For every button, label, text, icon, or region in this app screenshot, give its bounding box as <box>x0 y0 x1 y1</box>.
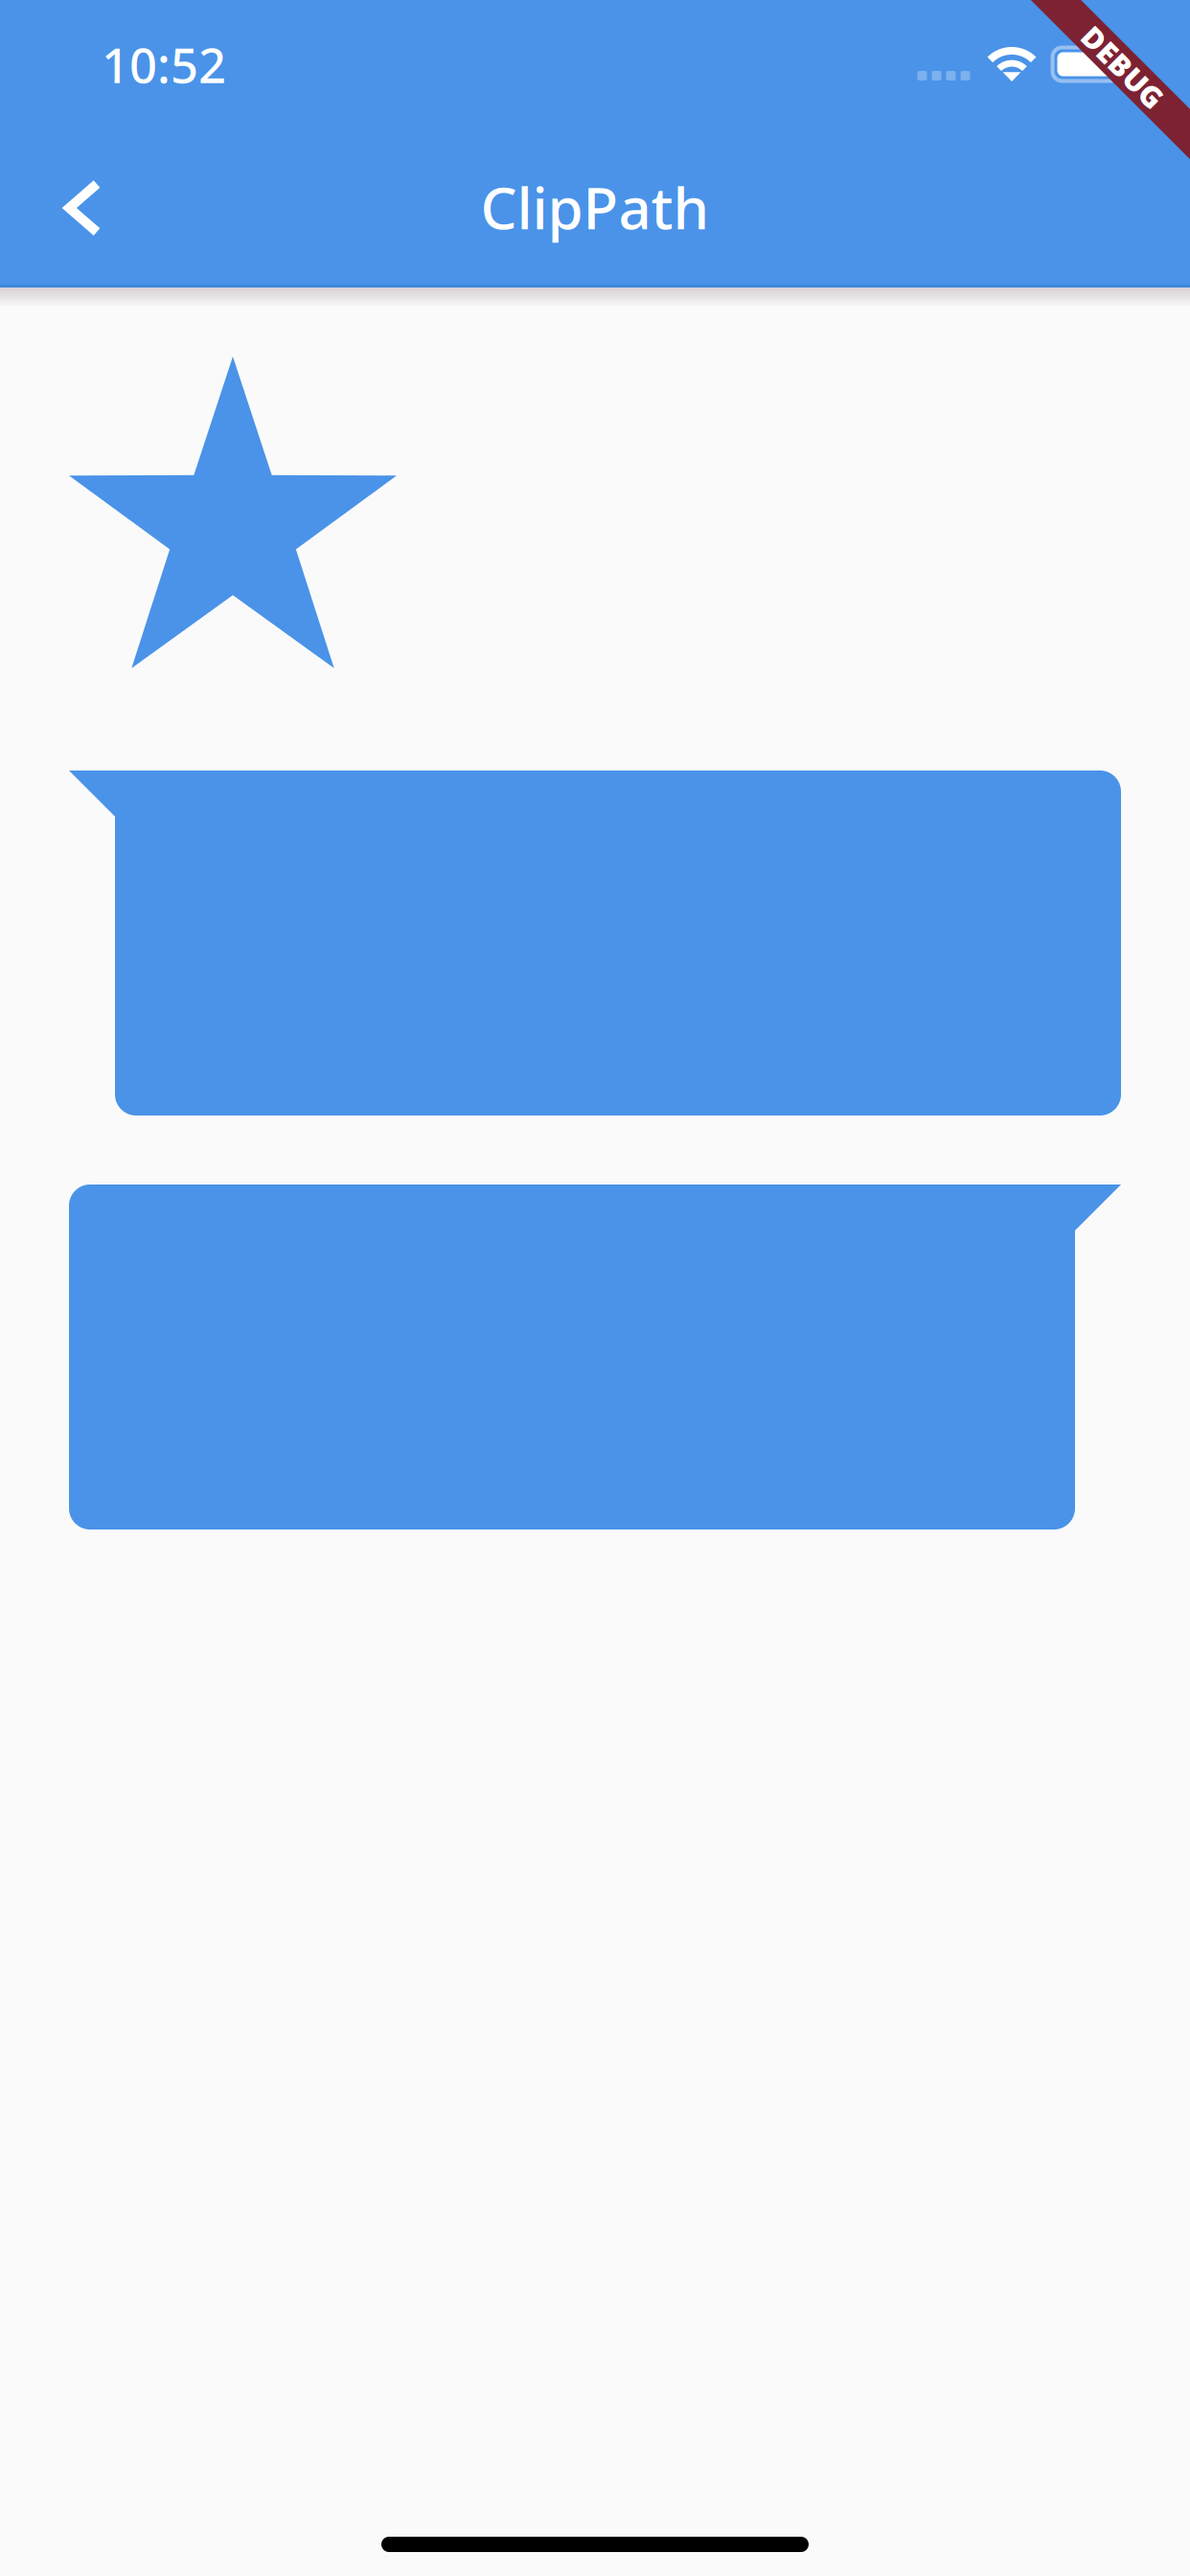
staticText: ClipPath <box>481 169 709 245</box>
staticText: DEBUG <box>1072 48 1174 87</box>
button[interactable]: Back <box>13 139 151 277</box>
staticText: 10:52 <box>102 32 226 97</box>
